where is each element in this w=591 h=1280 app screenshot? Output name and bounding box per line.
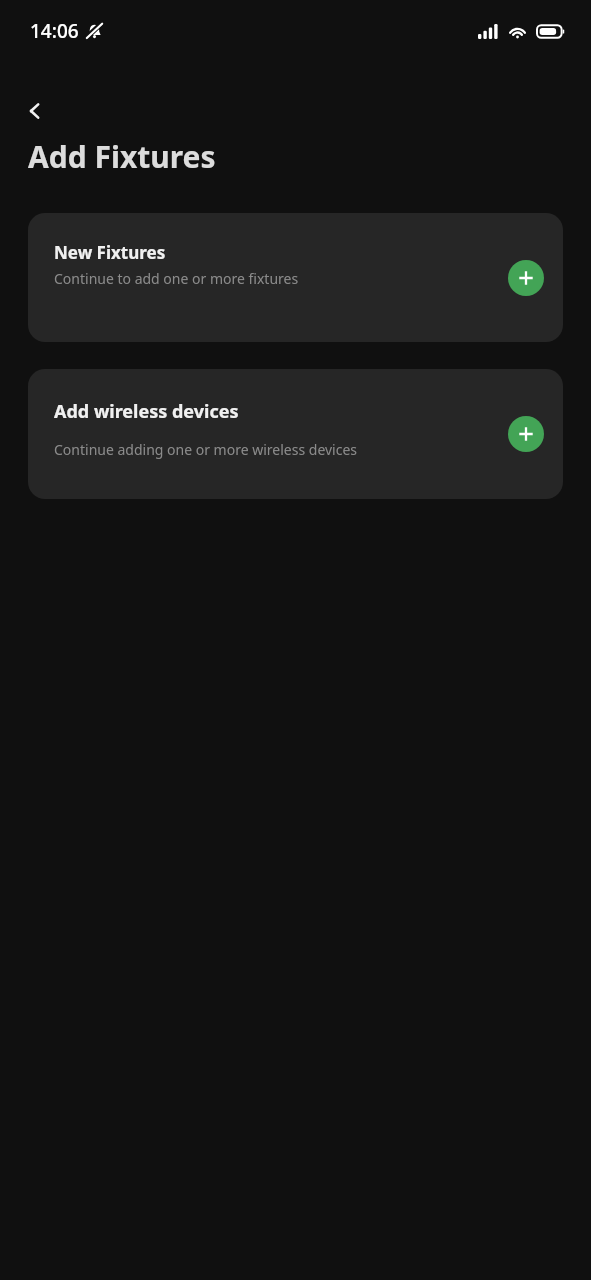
staticText: Continue to add one or more fixtures [54, 269, 299, 288]
staticText: Add Fixtures [28, 136, 216, 177]
staticText: Continue adding one or more wireless dev… [54, 440, 358, 459]
button[interactable]: Back [14, 90, 56, 132]
button[interactable]: Add wireless devices [28, 369, 563, 499]
staticText: 14:06 [30, 18, 79, 44]
button[interactable]: Add [508, 416, 544, 452]
staticText: New Fixtures [54, 241, 166, 264]
button[interactable]: Add [508, 260, 544, 296]
button[interactable]: New Fixtures [28, 213, 563, 342]
staticText: Add wireless devices [54, 399, 239, 424]
